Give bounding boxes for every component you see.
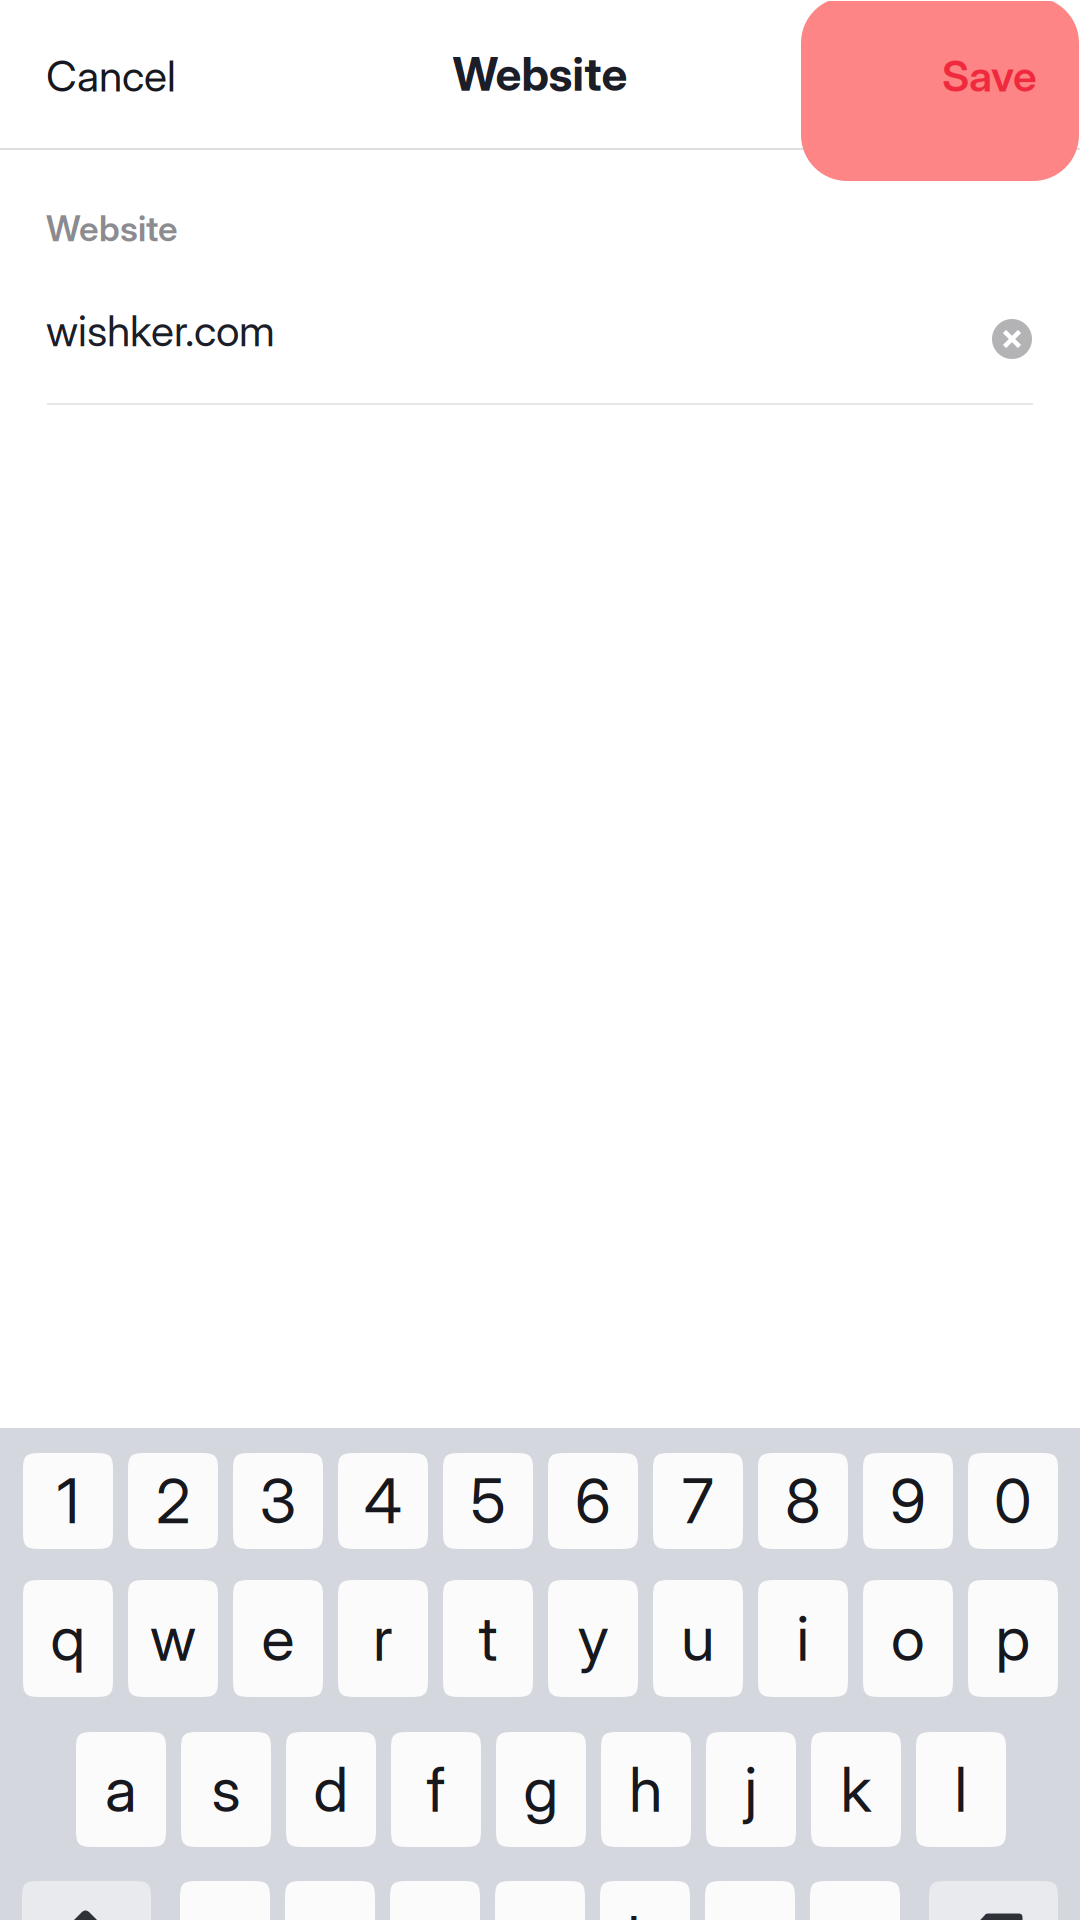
button[interactable]: h: [601, 1732, 691, 1847]
staticText: w: [150, 1601, 196, 1676]
staticText: Cancel: [46, 50, 176, 102]
button[interactable]: v: [495, 1881, 585, 1920]
staticText: g: [523, 1752, 558, 1827]
button[interactable]: 2: [128, 1453, 218, 1549]
button[interactable]: e: [233, 1580, 323, 1697]
button[interactable]: 4: [338, 1453, 428, 1549]
staticText: y: [577, 1601, 608, 1676]
staticText: Website: [46, 207, 178, 250]
button[interactable]: y: [548, 1580, 638, 1697]
button[interactable]: 5: [443, 1453, 533, 1549]
staticText: o: [891, 1601, 925, 1676]
button[interactable]: x: [285, 1881, 375, 1920]
staticText: t: [478, 1601, 497, 1676]
staticText: e: [261, 1601, 294, 1676]
button[interactable]: Cancel: [0, 2, 266, 150]
staticText: 0: [994, 1464, 1032, 1538]
staticText: Website: [452, 46, 627, 102]
staticText: b: [627, 1901, 662, 1920]
button[interactable]: w: [128, 1580, 218, 1697]
staticText: h: [629, 1752, 663, 1827]
button[interactable]: m: [810, 1881, 900, 1920]
staticText: 7: [682, 1464, 714, 1538]
button[interactable]: z: [180, 1881, 270, 1920]
button[interactable]: t: [443, 1580, 533, 1697]
button[interactable]: 1: [23, 1453, 113, 1549]
button[interactable]: k: [811, 1732, 901, 1847]
button[interactable]: j: [706, 1732, 796, 1847]
staticText: 9: [890, 1464, 926, 1538]
staticText: wishker.com: [46, 305, 275, 357]
button[interactable]: s: [181, 1732, 271, 1847]
button[interactable]: Clear text: [992, 319, 1032, 359]
button[interactable]: r: [338, 1580, 428, 1697]
staticText: 4: [364, 1464, 402, 1538]
staticText: Save: [942, 50, 1037, 102]
button[interactable]: Delete: [929, 1881, 1058, 1920]
staticText: 6: [575, 1464, 611, 1538]
staticText: 5: [470, 1464, 505, 1538]
staticText: p: [995, 1601, 1030, 1676]
button[interactable]: l: [916, 1732, 1006, 1847]
button[interactable]: c: [390, 1881, 480, 1920]
button[interactable]: 9: [863, 1453, 953, 1549]
staticText: u: [681, 1601, 715, 1676]
button[interactable]: o: [863, 1580, 953, 1697]
button[interactable]: 3: [233, 1453, 323, 1549]
button[interactable]: d: [286, 1732, 376, 1847]
staticText: q: [50, 1601, 85, 1676]
staticText: k: [840, 1752, 871, 1827]
staticText: d: [313, 1752, 348, 1827]
button[interactable]: q: [23, 1580, 113, 1697]
button[interactable]: 7: [653, 1453, 743, 1549]
button[interactable]: n: [705, 1881, 795, 1920]
staticText: 8: [785, 1464, 821, 1538]
staticText: j: [744, 1752, 757, 1827]
button[interactable]: u: [653, 1580, 743, 1697]
button[interactable]: p: [968, 1580, 1058, 1697]
staticText: r: [373, 1601, 393, 1676]
staticText: 1: [57, 1464, 79, 1538]
button[interactable]: 0: [968, 1453, 1058, 1549]
staticText: f: [426, 1752, 445, 1827]
staticText: s: [211, 1752, 240, 1827]
button[interactable]: 6: [548, 1453, 638, 1549]
staticText: i: [796, 1601, 809, 1676]
button[interactable]: Shift: [22, 1881, 151, 1920]
button[interactable]: g: [496, 1732, 586, 1847]
staticText: 3: [259, 1464, 296, 1538]
button[interactable]: f: [391, 1732, 481, 1847]
staticText: 2: [156, 1464, 190, 1538]
button[interactable]: b: [600, 1881, 690, 1920]
button[interactable]: a: [76, 1732, 166, 1847]
button[interactable]: Save: [857, 2, 1080, 150]
staticText: a: [105, 1752, 137, 1827]
button[interactable]: 8: [758, 1453, 848, 1549]
button[interactable]: i: [758, 1580, 848, 1697]
staticText: l: [954, 1752, 967, 1827]
